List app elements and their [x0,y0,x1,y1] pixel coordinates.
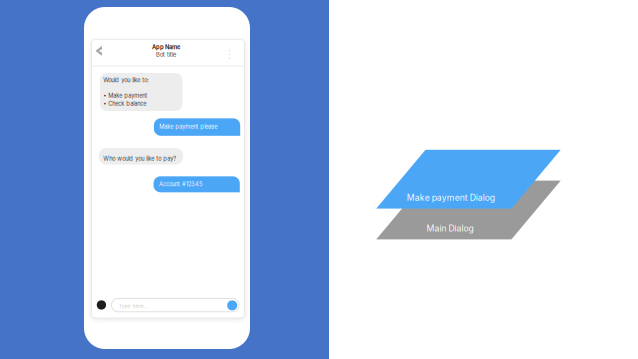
staticText: • Check balance [103,100,146,107]
button[interactable]: Back [90,41,107,61]
staticText: Make payment Dialog [407,192,495,203]
staticText: Account #12345 [159,181,202,188]
staticText: Who would you like to pay? [103,155,176,162]
staticText: Main Dialog [426,223,473,234]
staticText: Bot title [156,51,176,58]
staticText: • Make payment [103,92,147,99]
staticText: Make payment please [159,123,217,130]
button[interactable]: More options [223,44,235,64]
button[interactable]: Type here [111,298,239,312]
staticText: Type here... [118,303,149,309]
staticText: App Name [152,44,180,50]
staticText: Would you like to: [103,77,149,84]
button[interactable]: Send [226,299,239,312]
button[interactable]: Camera [94,298,108,312]
